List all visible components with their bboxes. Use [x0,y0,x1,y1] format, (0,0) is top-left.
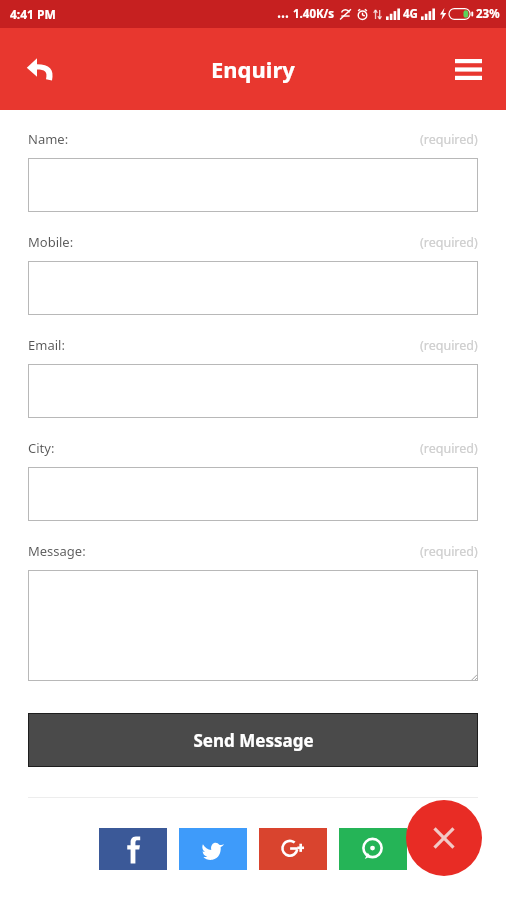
button[interactable] [28,467,478,521]
staticText: 1.40K/s [293,6,335,22]
staticText: Message: [28,542,86,560]
button[interactable]: Close [406,800,482,876]
staticText: Mobile: [28,233,74,251]
staticText: 4:41 PM [10,6,56,22]
button[interactable] [28,570,478,681]
staticText: Name: [28,130,69,148]
button[interactable] [28,261,478,315]
staticText: (required) [420,234,478,251]
button[interactable]: Twitter [179,828,247,870]
button[interactable]: Send Message [28,713,478,767]
staticText: (required) [420,543,478,560]
button[interactable]: Back [14,43,66,95]
staticText: Send Message [193,729,314,752]
staticText: (required) [420,440,478,457]
staticText: 4G [403,6,418,22]
button[interactable]: Google Plus [259,828,327,870]
button[interactable]: Facebook [99,828,167,870]
button[interactable]: WhatsApp [339,828,407,870]
button[interactable]: Menu [444,45,492,93]
staticText: Enquiry [211,54,295,84]
staticText: City: [28,439,55,457]
button[interactable] [28,364,478,418]
staticText: 23% [476,6,500,22]
button[interactable] [28,158,478,212]
staticText: (required) [420,131,478,148]
staticText: Email: [28,336,65,354]
staticText: (required) [420,337,478,354]
